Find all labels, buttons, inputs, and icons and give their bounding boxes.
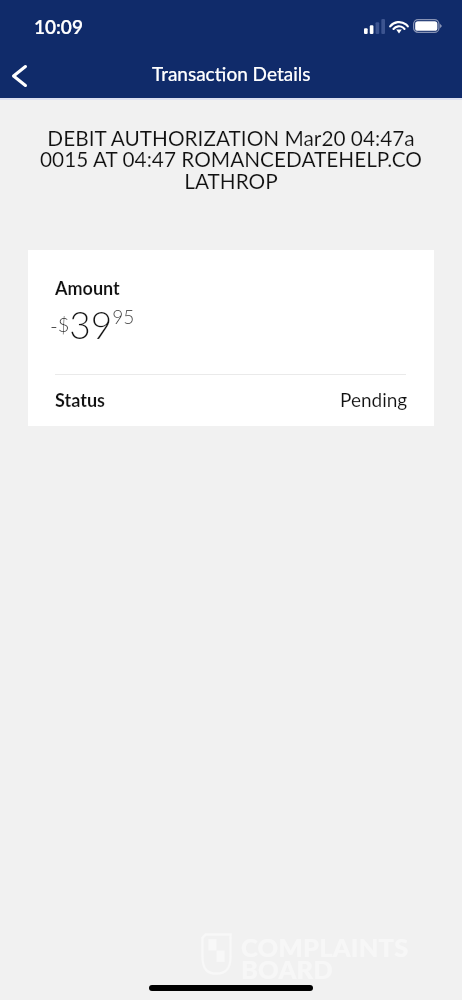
staticText: Pending (340, 388, 408, 411)
staticText: Status (55, 389, 105, 411)
staticText: Amount (55, 277, 120, 299)
button[interactable]: Back (1, 57, 38, 94)
staticText: DEBIT AUTHORIZATION Mar20 04:47a 0015 AT… (30, 125, 432, 193)
staticText: -$3995 (50, 302, 135, 346)
staticText: 10:09 (34, 15, 83, 38)
staticText: Transaction Details (152, 62, 311, 85)
